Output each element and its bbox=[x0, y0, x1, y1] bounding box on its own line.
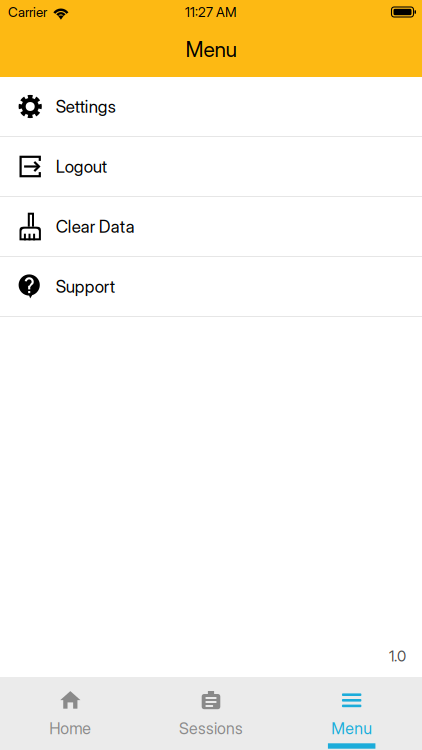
staticText: Logout bbox=[56, 156, 107, 177]
staticText: Menu bbox=[185, 37, 236, 62]
staticText: 11:27 AM bbox=[185, 4, 237, 20]
button[interactable]: Clear Data bbox=[0, 197, 422, 257]
button[interactable]: Menu bbox=[281, 677, 422, 750]
staticText: Carrier bbox=[8, 4, 47, 20]
staticText: Home bbox=[49, 719, 91, 738]
button[interactable]: Home bbox=[0, 677, 141, 750]
staticText: Support bbox=[56, 276, 115, 297]
staticText: Clear Data bbox=[56, 216, 135, 237]
button[interactable]: Support bbox=[0, 257, 422, 317]
button[interactable]: Settings bbox=[0, 77, 422, 137]
staticText: Sessions bbox=[179, 719, 243, 738]
button[interactable]: Sessions bbox=[141, 677, 281, 750]
staticText: Settings bbox=[56, 96, 116, 117]
staticText: 1.0 bbox=[389, 647, 406, 665]
button[interactable]: Logout bbox=[0, 137, 422, 197]
staticText: Menu bbox=[331, 719, 372, 738]
